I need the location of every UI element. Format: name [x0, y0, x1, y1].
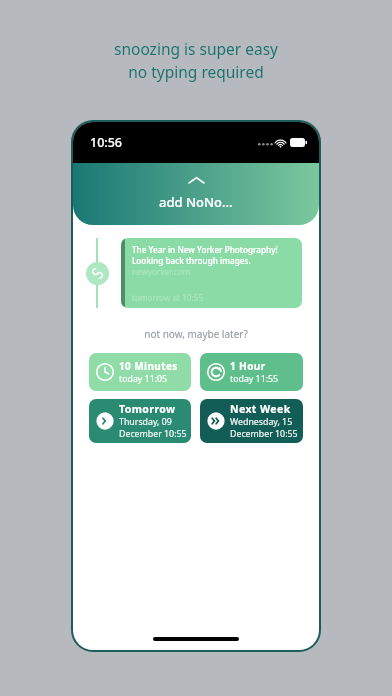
- button[interactable]: 10 Minutes: [89, 353, 191, 391]
- staticText: snoozing is super easy: [114, 38, 278, 59]
- other: Collapse: [189, 177, 204, 184]
- staticText: no typing required: [128, 61, 264, 82]
- button[interactable]: Collapse: [73, 163, 319, 225]
- button[interactable]: Next Week: [200, 399, 303, 443]
- staticText: Looking back through images.: [132, 255, 251, 266]
- staticText: 10:56: [90, 134, 123, 151]
- staticText: 10 Minutes: [119, 359, 178, 373]
- staticText: December 10:55: [230, 428, 298, 440]
- staticText: today 11:05: [119, 373, 168, 385]
- staticText: 1 Hour: [230, 359, 266, 373]
- staticText: Thursday, 09: [119, 416, 172, 428]
- staticText: today 11:55: [230, 373, 279, 385]
- button[interactable]: Link: [86, 262, 109, 285]
- staticText: Next Week: [230, 402, 291, 416]
- staticText: not now, maybe later?: [73, 327, 319, 341]
- staticText: Wednesday, 15: [230, 416, 293, 428]
- button[interactable]: 1 Hour: [200, 353, 303, 391]
- button[interactable]: Tomorrow: [89, 399, 191, 443]
- staticText: add NoNo…: [159, 193, 233, 211]
- staticText: newyorker.com: [132, 266, 191, 277]
- staticText: December 10:55: [119, 428, 187, 440]
- button[interactable]: The Year in New Yorker Photography!: [121, 238, 302, 308]
- staticText: The Year in New Yorker Photography!: [132, 244, 278, 255]
- staticText: Tomorrow: [119, 402, 176, 416]
- staticText: tomorrow at 10:55: [132, 292, 204, 303]
